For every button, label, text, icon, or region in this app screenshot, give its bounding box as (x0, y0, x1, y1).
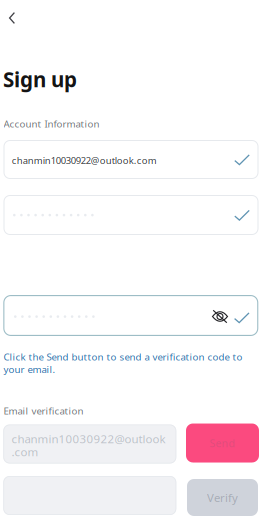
button[interactable]: Send (186, 423, 259, 462)
staticText: chanmin10030922@outlook (11, 431, 165, 447)
staticText: your email. (3, 363, 55, 376)
staticText: Click the Send button to send a verifica… (3, 350, 242, 363)
button[interactable]: chanmin10030922@outlook (3, 424, 176, 463)
staticText: Account Information (3, 117, 99, 130)
staticText: .com (11, 444, 38, 460)
button[interactable] (3, 195, 258, 235)
staticText: Send (209, 436, 235, 450)
staticText: Email verification (3, 404, 83, 417)
button[interactable]: chanmin10030922@outlook.com (3, 140, 258, 179)
staticText: chanmin10030922@outlook.com (12, 154, 157, 167)
staticText: Sign up (3, 65, 77, 93)
button[interactable]: Show password (208, 305, 232, 327)
button[interactable]: Back (1, 7, 23, 29)
button[interactable]: Verify (187, 479, 258, 516)
staticText: Verify (207, 490, 238, 505)
